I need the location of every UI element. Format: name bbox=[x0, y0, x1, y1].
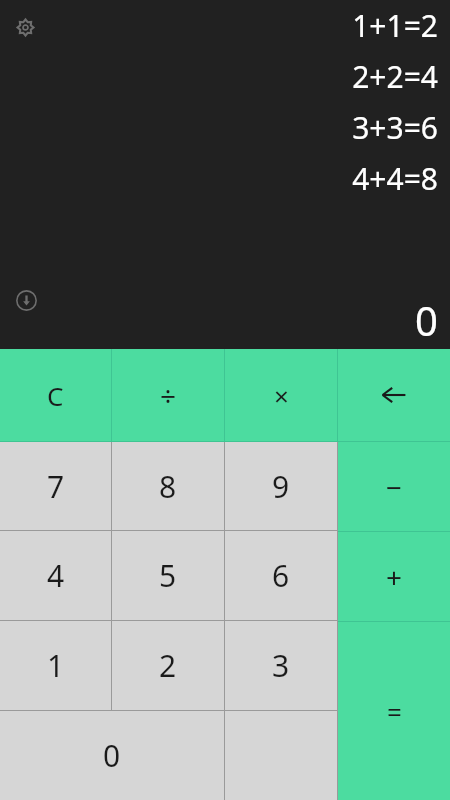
button[interactable]: × bbox=[225, 349, 337, 441]
staticText: 4+4=8 bbox=[352, 158, 438, 199]
staticText: 0 bbox=[415, 293, 438, 347]
staticText: 6 bbox=[272, 555, 290, 596]
staticText: 1+1=2 bbox=[352, 5, 438, 46]
button[interactable]: 3 bbox=[225, 621, 337, 710]
button[interactable]: = bbox=[338, 622, 450, 800]
staticText: 0 bbox=[103, 735, 121, 776]
button[interactable]: ÷ bbox=[112, 349, 224, 441]
staticText: 3 bbox=[272, 645, 290, 686]
staticText: 1 bbox=[47, 645, 65, 686]
staticText: ÷ bbox=[160, 376, 177, 414]
staticText: + bbox=[386, 558, 403, 596]
button[interactable]: 9 bbox=[225, 442, 337, 530]
staticText: 9 bbox=[272, 466, 290, 507]
staticText: 8 bbox=[159, 466, 177, 507]
staticText: C bbox=[47, 378, 64, 413]
button[interactable]: + bbox=[338, 532, 450, 621]
staticText: 2+2=4 bbox=[352, 56, 438, 97]
staticText: 4 bbox=[47, 555, 65, 596]
button[interactable]: Settings bbox=[9, 11, 41, 43]
staticText: 2 bbox=[159, 645, 177, 686]
staticText: × bbox=[274, 378, 289, 413]
button[interactable]: 0 bbox=[0, 711, 224, 800]
button[interactable]: 6 bbox=[225, 531, 337, 620]
button[interactable]: 5 bbox=[112, 531, 224, 620]
staticText: − bbox=[386, 468, 403, 506]
staticText: 7 bbox=[47, 466, 65, 507]
button[interactable]: 2 bbox=[112, 621, 224, 710]
button[interactable]: 1 bbox=[0, 621, 111, 710]
button[interactable]: C bbox=[0, 349, 111, 441]
staticText: = bbox=[387, 694, 402, 729]
button[interactable]: Save history bbox=[12, 286, 40, 314]
button[interactable]: 8 bbox=[112, 442, 224, 530]
button[interactable]: Backspace bbox=[338, 349, 450, 441]
staticText: 3+3=6 bbox=[352, 107, 438, 148]
button[interactable]: 4 bbox=[0, 531, 111, 620]
button[interactable]: − bbox=[338, 442, 450, 531]
staticText: 5 bbox=[159, 555, 177, 596]
button[interactable]: 7 bbox=[0, 442, 111, 530]
